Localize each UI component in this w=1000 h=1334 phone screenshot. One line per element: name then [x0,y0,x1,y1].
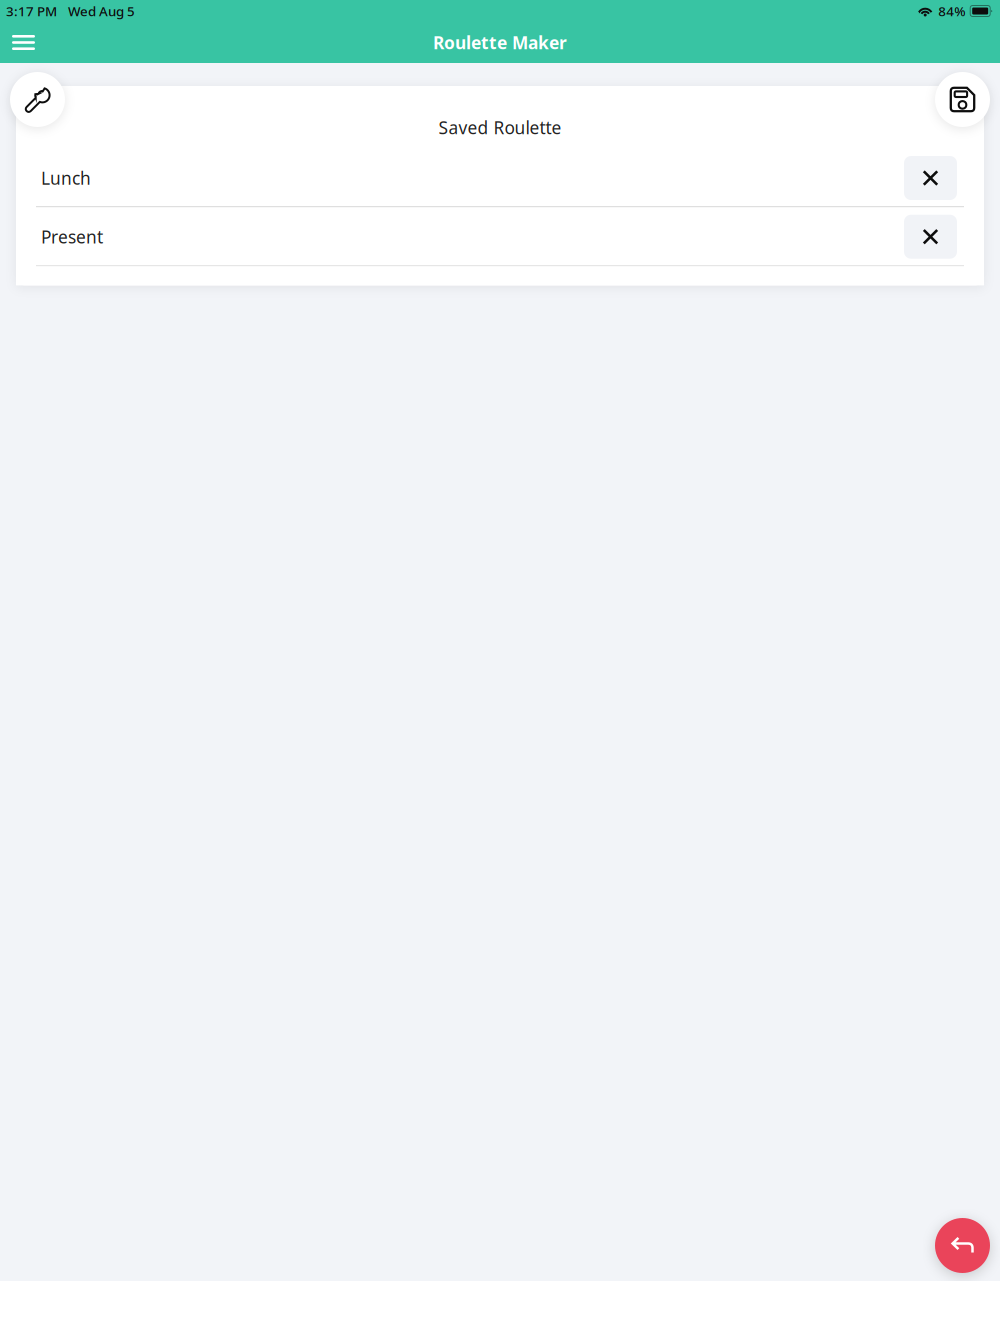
staticText: Wed Aug 5 [68,2,135,20]
button[interactable]: Delete Present [904,215,957,259]
button[interactable]: Settings [10,72,65,127]
staticText: 3:17 PM [6,2,57,20]
staticText: Lunch [41,166,91,189]
staticText: Saved Roulette [438,116,561,139]
button[interactable]: Back [935,1218,990,1273]
button[interactable]: Delete Lunch [904,156,957,200]
button[interactable]: Save [935,72,990,127]
staticText: Present [41,225,103,248]
staticText: 84% [938,2,965,20]
button[interactable]: Menu [0,22,47,63]
staticText: Roulette Maker [433,31,567,54]
